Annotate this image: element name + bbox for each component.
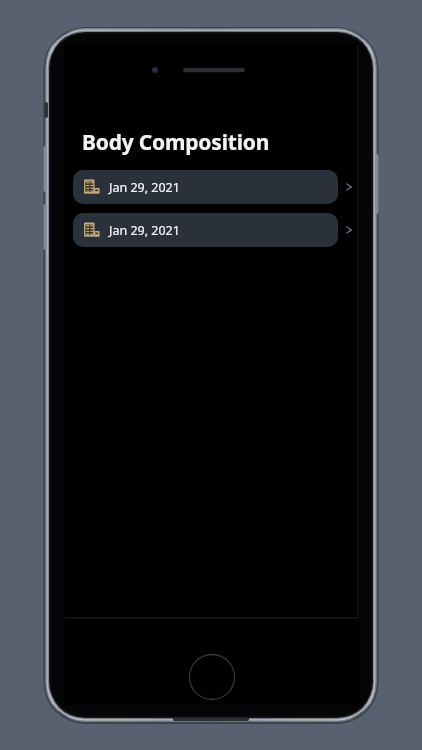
button[interactable]: Home xyxy=(187,652,237,702)
staticText: Jan 29, 2021 xyxy=(109,222,180,239)
staticText: Jan 29, 2021 xyxy=(109,179,180,196)
staticText: Body Composition xyxy=(82,128,270,157)
button[interactable]: Jan 29, 2021 xyxy=(64,170,360,204)
button[interactable]: Jan 29, 2021 xyxy=(64,213,360,247)
